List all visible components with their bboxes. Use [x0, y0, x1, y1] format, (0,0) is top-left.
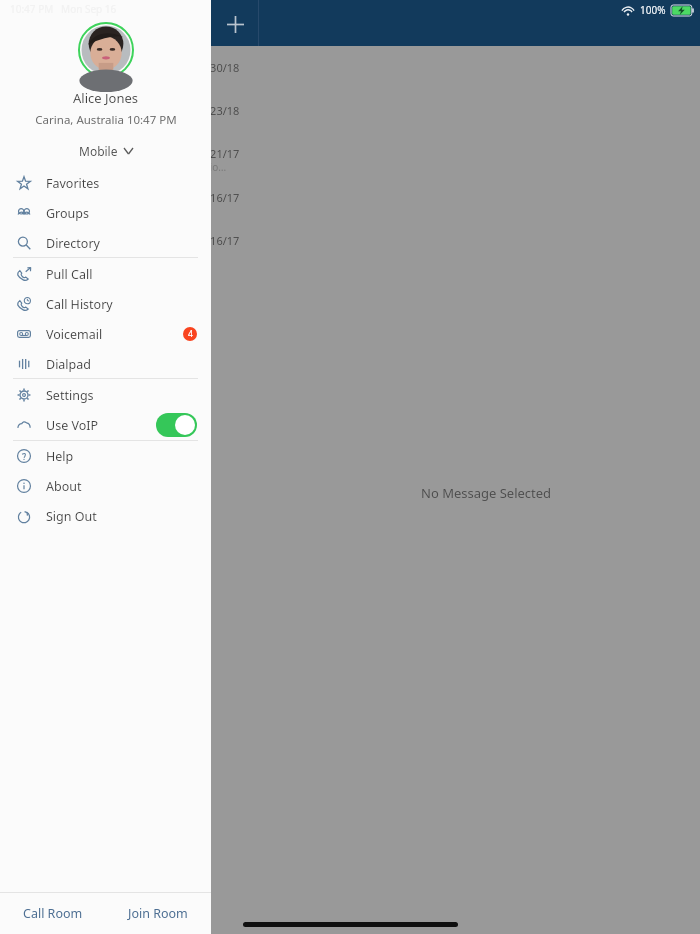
staticText: 4 — [188, 328, 193, 340]
button[interactable]: Sign Out — [0, 501, 211, 531]
button[interactable]: Settings — [0, 380, 211, 410]
staticText: Use VoIP — [46, 417, 99, 434]
button[interactable]: Use VoIP — [0, 410, 211, 440]
button[interactable]: Join Room — [105, 893, 211, 934]
staticText: Voicemail — [46, 326, 103, 343]
staticText: Join Room — [128, 905, 188, 922]
staticText: Pull Call — [46, 266, 93, 283]
staticText: About — [46, 478, 82, 495]
button[interactable]: Help — [0, 441, 211, 471]
button[interactable]: Voicemail — [0, 319, 211, 349]
staticText: 100% — [640, 3, 666, 17]
button[interactable]: New message — [213, 10, 258, 38]
button[interactable]: Call History — [0, 289, 211, 319]
staticText: 10:47 PM Mon Sep 16 — [10, 2, 117, 16]
staticText: No Message Selected — [421, 484, 552, 502]
button[interactable]: Pull Call — [0, 259, 211, 289]
staticText: /30/18 — [206, 60, 240, 75]
staticText: /23/18 — [206, 103, 240, 118]
staticText: /21/17 — [206, 146, 240, 161]
staticText: Sign Out — [46, 508, 97, 525]
button[interactable]: Use VoIP toggle — [156, 413, 197, 437]
staticText: Carina, Australia 10:47 PM — [35, 112, 177, 128]
staticText: Favorites — [46, 175, 100, 192]
button[interactable]: Call Room — [0, 893, 105, 934]
staticText: /16/17 — [206, 233, 240, 248]
staticText: /16/17 — [206, 190, 240, 205]
button[interactable]: Directory — [0, 228, 211, 258]
staticText: Settings — [46, 387, 94, 404]
staticText: Dialpad — [46, 356, 91, 373]
button[interactable]: Dialpad — [0, 349, 211, 379]
button[interactable]: About — [0, 471, 211, 501]
staticText: Call Room — [23, 905, 83, 922]
staticText: Alice Jones — [73, 89, 138, 107]
staticText: tio… — [206, 160, 227, 174]
button[interactable]: Mobile — [69, 139, 143, 163]
button[interactable]: Favorites — [0, 168, 211, 198]
staticText: Directory — [46, 235, 100, 252]
staticText: Mobile — [79, 143, 118, 159]
button[interactable]: Groups — [0, 198, 211, 228]
staticText: Groups — [46, 205, 89, 222]
staticText: Help — [46, 448, 74, 465]
staticText: Call History — [46, 296, 113, 313]
